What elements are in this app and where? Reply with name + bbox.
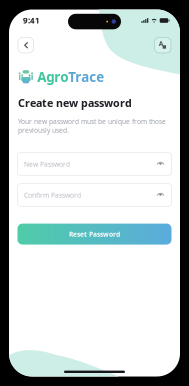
staticText: Agro	[37, 68, 68, 86]
button[interactable]: Back	[18, 37, 33, 53]
staticText: Reset Password	[69, 230, 120, 239]
staticText: 9:41	[23, 15, 40, 26]
button[interactable]: Change language	[154, 37, 171, 53]
staticText: Trace	[68, 68, 104, 86]
staticText: Create new password	[18, 96, 132, 110]
button[interactable]: Reset Password	[17, 224, 171, 245]
button[interactable]: Confirm Password	[17, 184, 171, 207]
staticText: New Password	[24, 160, 70, 169]
staticText: Your new password must be unique from th…	[18, 117, 166, 135]
staticText: A	[159, 39, 164, 48]
button[interactable]: New Password	[17, 153, 171, 176]
staticText: Confirm Password	[24, 191, 81, 200]
